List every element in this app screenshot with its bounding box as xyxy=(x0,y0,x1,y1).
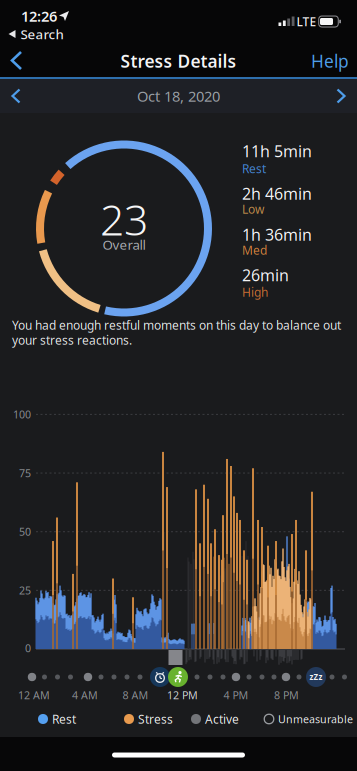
button[interactable]: Previous day xyxy=(10,88,21,103)
button[interactable]: Sleep xyxy=(306,667,326,687)
staticText: 23 xyxy=(100,191,148,247)
button[interactable]: Activity xyxy=(168,667,188,687)
staticText: Rest xyxy=(242,160,266,176)
staticText: 1h 36min xyxy=(242,224,312,245)
staticText: 12 PM xyxy=(167,688,198,702)
staticText: Low xyxy=(242,201,264,217)
button[interactable]: Back to Search xyxy=(8,25,63,43)
staticText: You had enough restful moments on this d… xyxy=(12,317,341,333)
staticText: Rest xyxy=(52,711,76,727)
staticText: 26min xyxy=(242,264,289,286)
staticText: LTE xyxy=(296,13,316,29)
staticText: High xyxy=(242,284,268,300)
staticText: 75 xyxy=(19,466,31,480)
staticText: Med xyxy=(242,242,267,258)
staticText: 8 PM xyxy=(274,688,299,702)
staticText: Overall xyxy=(102,236,145,253)
staticText: 50 xyxy=(19,525,31,539)
staticText: Active xyxy=(205,711,239,727)
button[interactable]: Help xyxy=(311,49,349,72)
staticText: 0 xyxy=(25,641,31,655)
staticText: your stress reactions. xyxy=(12,332,132,348)
button[interactable]: Back xyxy=(10,51,23,70)
staticText: 4 AM xyxy=(72,688,98,702)
staticText: 2h 46min xyxy=(242,183,312,204)
staticText: 11h 5min xyxy=(242,140,312,162)
button[interactable]: Next day xyxy=(335,88,346,103)
staticText: Stress xyxy=(138,711,173,727)
staticText: zZz xyxy=(309,672,322,682)
staticText: 25 xyxy=(19,583,31,597)
staticText: Search xyxy=(20,25,63,43)
staticText: Oct 18, 2020 xyxy=(137,86,220,106)
button[interactable]: Alarm event xyxy=(150,667,170,687)
staticText: Help xyxy=(311,49,349,72)
staticText: Stress Details xyxy=(120,49,236,72)
staticText: 12 AM xyxy=(18,688,50,702)
staticText: 8 AM xyxy=(122,688,148,702)
staticText: 12:26 xyxy=(21,6,57,26)
staticText: Unmeasurable xyxy=(278,712,353,726)
staticText: 100 xyxy=(13,407,31,421)
staticText: 4 PM xyxy=(223,688,248,702)
